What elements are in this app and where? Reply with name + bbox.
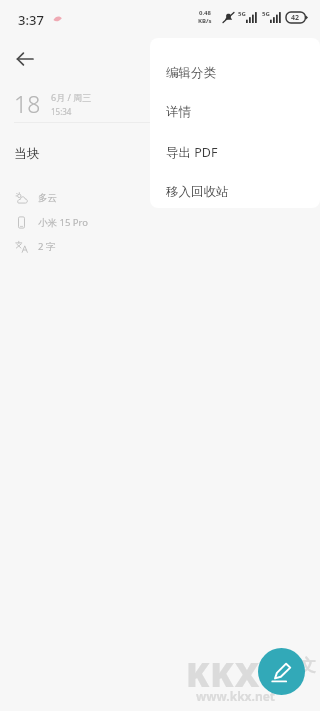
staticText: KKX (186, 651, 261, 697)
staticText: 当块 (14, 145, 40, 161)
staticText: 多云 (38, 192, 57, 204)
staticText: 18 (14, 88, 41, 119)
staticText: www.kkx.net (196, 688, 276, 704)
button[interactable]: Back (6, 40, 44, 78)
button[interactable]: 编辑分类 (150, 56, 320, 90)
staticText: 15:34 (51, 106, 72, 117)
staticText: 中文 (282, 655, 316, 676)
staticText: 3:37 (18, 11, 44, 29)
button[interactable]: 详情 (150, 95, 320, 129)
staticText: KB/s (198, 17, 212, 25)
staticText: 小米 15 Pro (38, 216, 89, 229)
staticText: 5G (238, 10, 246, 18)
staticText: 42 (291, 13, 300, 23)
staticText: 2 字 (38, 240, 56, 253)
staticText: 5G (262, 10, 270, 18)
button[interactable]: New note (258, 648, 305, 695)
staticText: 6月 / 周三 (51, 91, 92, 103)
staticText: 编辑分类 (166, 65, 216, 81)
staticText: 导出 PDF (166, 144, 218, 161)
button[interactable]: 移入回收站 (150, 175, 320, 208)
button[interactable]: 导出 PDF (150, 135, 320, 169)
staticText: 移入回收站 (166, 184, 229, 200)
staticText: 详情 (166, 104, 191, 120)
staticText: 0.48 (199, 9, 211, 17)
